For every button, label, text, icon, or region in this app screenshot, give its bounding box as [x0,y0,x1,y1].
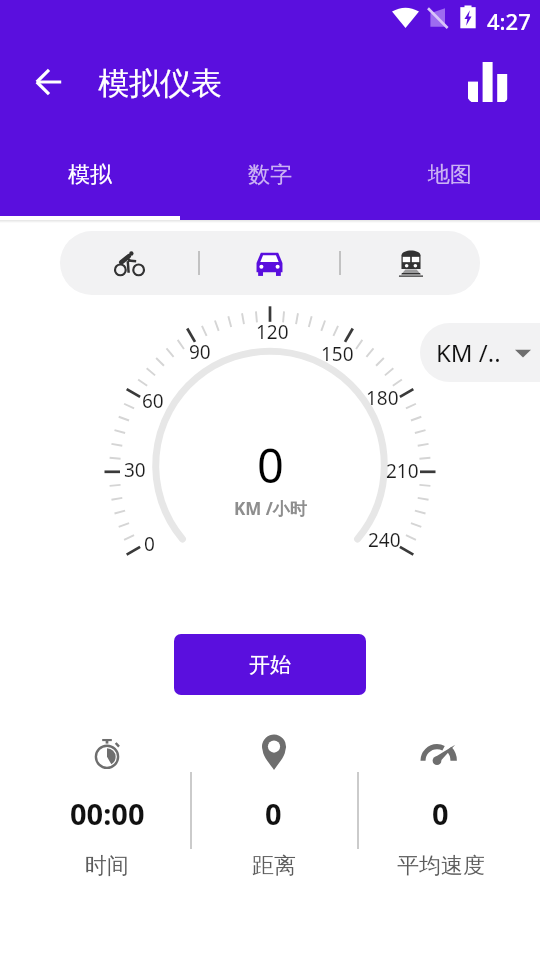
button[interactable]: 数字 [180,133,360,217]
staticText: 90 [189,339,211,365]
staticText: 0 [144,531,155,557]
button[interactable]: Statistics [462,56,514,108]
staticText: 180 [366,385,399,411]
staticText: 120 [256,319,289,345]
button[interactable]: KM /.. [420,323,540,382]
button[interactable]: Train [341,231,480,295]
staticText: 模拟 [68,161,112,189]
staticText: 210 [386,458,419,484]
staticText: 开始 [249,652,291,678]
button[interactable]: 模拟 [0,133,180,217]
button[interactable]: Car [200,231,339,295]
button[interactable]: 00:00 [24,735,190,880]
staticText: KM /.. [436,336,501,369]
staticText: 距离 [252,852,296,880]
staticText: 4:27 [487,6,531,30]
staticText: 240 [368,527,401,553]
staticText: 0 [265,794,282,833]
button[interactable]: 0 [190,735,357,880]
button[interactable]: 地图 [360,133,540,217]
staticText: 0 [432,794,449,833]
staticText: 150 [321,341,354,367]
staticText: 模拟仪表 [98,64,222,103]
staticText: 时间 [85,852,129,880]
staticText: 数字 [248,161,292,189]
button[interactable]: 开始 [174,634,366,695]
staticText: KM /小时 [234,497,307,520]
staticText: 地图 [428,161,472,189]
staticText: 平均速度 [397,852,485,880]
button[interactable]: Back [25,58,73,106]
button[interactable]: Bicycle [60,231,198,295]
staticText: 60 [142,388,164,414]
staticText: 0 [257,433,284,497]
staticText: 30 [124,457,146,483]
button[interactable]: 0 [357,735,524,880]
staticText: 00:00 [70,794,145,833]
